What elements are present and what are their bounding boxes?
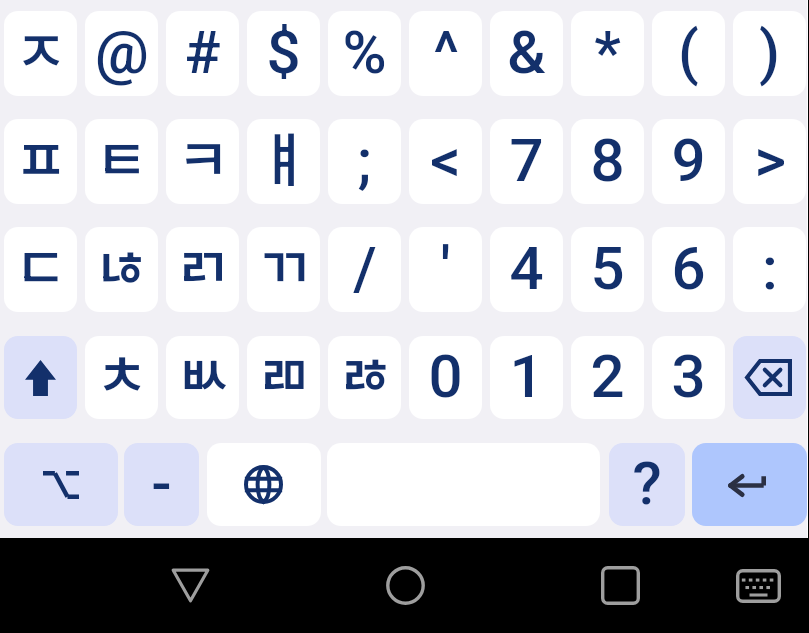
button[interactable]: ㅋ bbox=[166, 119, 239, 204]
button[interactable]: ㅀ bbox=[328, 336, 401, 419]
staticText: ㅌ bbox=[95, 119, 149, 198]
staticText: * bbox=[594, 17, 621, 87]
staticText: 5 bbox=[590, 233, 625, 303]
staticText: / bbox=[353, 233, 377, 303]
button[interactable]: * bbox=[571, 11, 644, 96]
button[interactable]: 1 bbox=[490, 336, 563, 419]
button[interactable]: ㄶ bbox=[85, 227, 158, 312]
staticText: - bbox=[151, 448, 172, 518]
button[interactable]: Switch keyboard bbox=[720, 538, 796, 633]
staticText: ㄷ bbox=[14, 227, 68, 306]
button[interactable]: Shift bbox=[4, 336, 77, 419]
button[interactable]: ㄷ bbox=[4, 227, 77, 312]
staticText: ? bbox=[632, 448, 662, 518]
button[interactable]: Alt bbox=[4, 443, 118, 526]
button[interactable]: ) bbox=[733, 11, 806, 96]
button[interactable]: @ bbox=[85, 11, 158, 96]
staticText: ㅈ bbox=[14, 11, 68, 90]
staticText: ' bbox=[440, 233, 451, 303]
staticText: ^ bbox=[433, 17, 459, 87]
button[interactable]: < bbox=[409, 119, 482, 204]
button[interactable]: : bbox=[733, 227, 806, 312]
staticText: ㅄ bbox=[176, 336, 230, 413]
staticText: % bbox=[342, 17, 387, 87]
button[interactable]: Question mark bbox=[609, 443, 685, 526]
staticText: ㅀ bbox=[338, 336, 392, 413]
staticText: ㄶ bbox=[95, 227, 149, 306]
button[interactable]: ㅈ bbox=[4, 11, 77, 96]
button[interactable]: 8 bbox=[571, 119, 644, 204]
button[interactable]: 2 bbox=[571, 336, 644, 419]
button[interactable]: 3 bbox=[652, 336, 725, 419]
button[interactable]: Minus bbox=[124, 443, 199, 526]
button[interactable]: ; bbox=[328, 119, 401, 204]
button[interactable]: Recent apps bbox=[582, 538, 658, 633]
staticText: : bbox=[762, 233, 778, 303]
staticText: 3 bbox=[671, 341, 706, 411]
staticText: ; bbox=[357, 125, 372, 195]
button[interactable]: Change keyboard language bbox=[207, 443, 321, 526]
button[interactable]: & bbox=[490, 11, 563, 96]
button[interactable]: / bbox=[328, 227, 401, 312]
staticText: ㄲ bbox=[257, 227, 311, 306]
button[interactable]: Back bbox=[152, 538, 228, 633]
button[interactable]: 5 bbox=[571, 227, 644, 312]
staticText: ㅋ bbox=[176, 119, 230, 198]
staticText: # bbox=[184, 17, 221, 87]
button[interactable]: 9 bbox=[652, 119, 725, 204]
button[interactable]: 6 bbox=[652, 227, 725, 312]
button[interactable]: > bbox=[733, 119, 806, 204]
staticText: @ bbox=[95, 17, 149, 87]
button[interactable]: Enter bbox=[692, 443, 807, 526]
staticText: & bbox=[507, 17, 546, 87]
staticText: ( bbox=[678, 17, 699, 87]
button[interactable]: ㅊ bbox=[85, 336, 158, 419]
staticText: 1 bbox=[509, 341, 544, 411]
button[interactable]: ^ bbox=[409, 11, 482, 96]
staticText: 0 bbox=[428, 341, 463, 411]
staticText: ) bbox=[759, 17, 780, 87]
button[interactable]: % bbox=[328, 11, 401, 96]
button[interactable]: $ bbox=[247, 11, 320, 96]
button[interactable]: ' bbox=[409, 227, 482, 312]
staticText: ㅒ bbox=[257, 119, 311, 198]
staticText: 7 bbox=[509, 125, 544, 195]
staticText: 8 bbox=[590, 125, 625, 195]
staticText: 4 bbox=[509, 233, 544, 303]
button[interactable]: Backspace bbox=[733, 336, 806, 419]
staticText: $ bbox=[266, 17, 301, 87]
button[interactable]: # bbox=[166, 11, 239, 96]
staticText: 6 bbox=[671, 233, 706, 303]
staticText: < bbox=[430, 125, 461, 195]
button[interactable]: ㅍ bbox=[4, 119, 77, 204]
staticText: ㄺ bbox=[176, 227, 230, 306]
button[interactable]: ㄺ bbox=[166, 227, 239, 312]
button[interactable]: ㄲ bbox=[247, 227, 320, 312]
button[interactable]: 7 bbox=[490, 119, 563, 204]
staticText: ㅊ bbox=[95, 336, 149, 413]
staticText: ㅍ bbox=[14, 119, 68, 198]
button[interactable]: 4 bbox=[490, 227, 563, 312]
button[interactable]: ㄻ bbox=[247, 336, 320, 419]
staticText: > bbox=[754, 125, 786, 195]
button[interactable]: ㅄ bbox=[166, 336, 239, 419]
button[interactable]: 0 bbox=[409, 336, 482, 419]
button[interactable]: ㅌ bbox=[85, 119, 158, 204]
staticText: 9 bbox=[671, 125, 706, 195]
button[interactable]: Home bbox=[367, 538, 443, 633]
staticText: ㄻ bbox=[257, 336, 311, 413]
staticText: 2 bbox=[590, 341, 625, 411]
button[interactable]: ㅒ bbox=[247, 119, 320, 204]
button[interactable]: ( bbox=[652, 11, 725, 96]
